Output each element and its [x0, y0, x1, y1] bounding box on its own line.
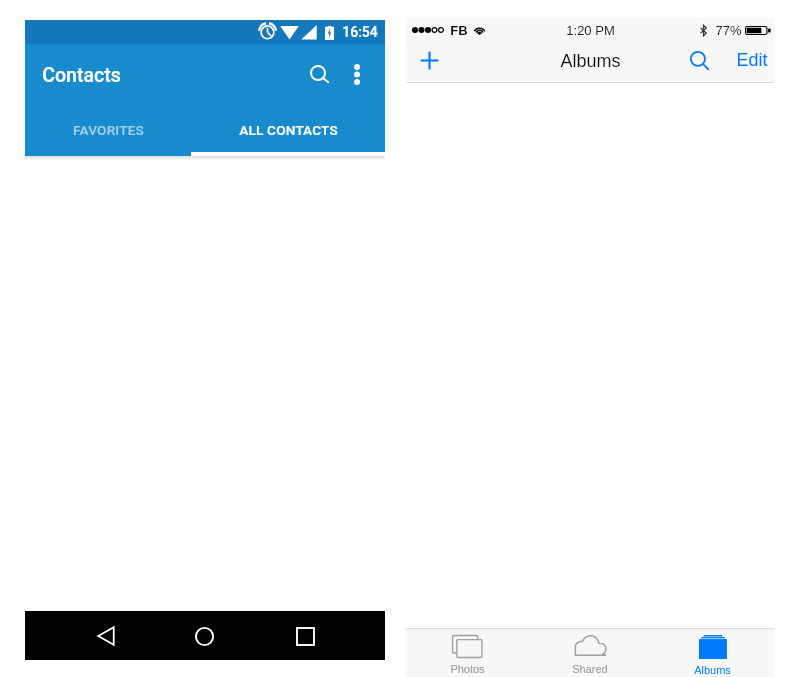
staticText: Contacts — [42, 64, 121, 87]
staticText: ALL CONTACTS — [239, 122, 338, 138]
button[interactable]: Recents — [283, 612, 331, 660]
button[interactable]: Search — [680, 46, 718, 74]
staticText: Albums — [560, 51, 621, 71]
button[interactable]: Shared — [528, 629, 651, 677]
staticText: FAVORITES — [73, 122, 144, 138]
staticText: 77% — [715, 23, 742, 38]
button[interactable]: Back — [79, 612, 127, 660]
button[interactable]: Edit — [718, 46, 774, 74]
button[interactable]: Search — [297, 44, 341, 101]
button[interactable]: ALL CONTACTS — [191, 105, 385, 154]
staticText: Albums — [694, 664, 731, 676]
button[interactable]: More options — [341, 44, 372, 101]
staticText: Edit — [736, 50, 768, 70]
button[interactable]: Photos — [406, 629, 528, 677]
staticText: Photos — [450, 663, 485, 675]
staticText: 1:20 PM — [566, 23, 615, 38]
button[interactable]: FAVORITES — [25, 105, 191, 154]
staticText: 16:54 — [342, 24, 378, 40]
button[interactable]: Home — [181, 612, 229, 660]
staticText: FB — [450, 23, 468, 38]
button[interactable]: Add album — [408, 46, 450, 74]
staticText: Shared — [572, 663, 608, 675]
button[interactable]: Albums — [651, 629, 774, 677]
